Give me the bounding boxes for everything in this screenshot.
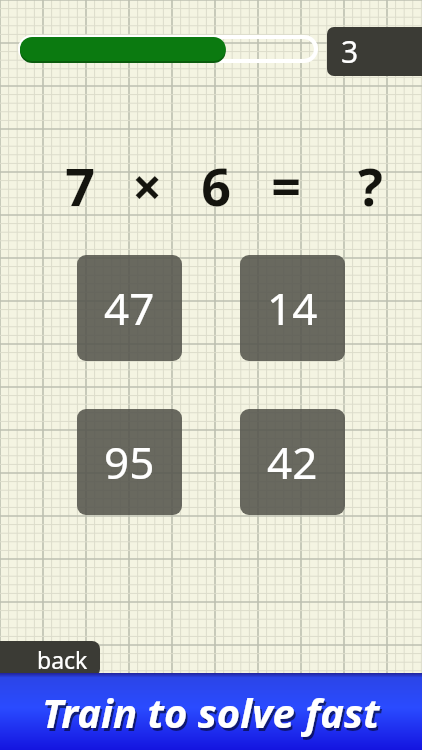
button[interactable]: 3 [327, 27, 422, 76]
button[interactable]: back [0, 641, 100, 677]
staticText: 42 [267, 432, 318, 492]
staticText: back [37, 644, 88, 675]
button[interactable]: Answer 42 [240, 409, 345, 515]
button[interactable]: Answer 47 [77, 255, 182, 361]
staticText: × [132, 150, 162, 212]
staticText: 95 [104, 432, 155, 492]
staticText: 6 [201, 150, 231, 212]
staticText: 47 [104, 278, 155, 338]
staticText: Train to solve fast [42, 685, 380, 739]
staticText: 3 [341, 31, 359, 72]
staticText: ? [358, 150, 383, 212]
staticText: 7 [65, 150, 95, 212]
button[interactable]: Answer 95 [77, 409, 182, 515]
button[interactable]: Answer 14 [240, 255, 345, 361]
staticText: = [271, 150, 301, 212]
button[interactable]: Train to solve fast [0, 673, 422, 750]
staticText: 14 [267, 278, 318, 338]
staticText: Train to solve fast [44, 688, 382, 742]
